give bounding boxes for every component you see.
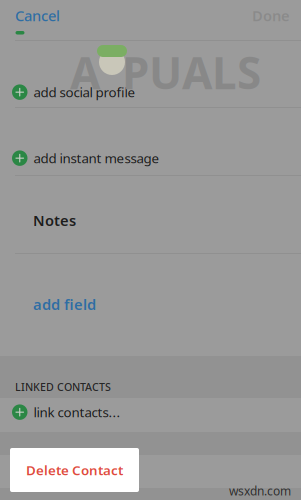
staticText: wsxdn.com	[229, 483, 291, 499]
staticText: add field	[33, 294, 96, 314]
button[interactable]: add field	[0, 254, 301, 356]
button[interactable]: Cancel	[13, 3, 62, 28]
button[interactable]: Done	[250, 3, 292, 28]
staticText: LINKED CONTACTS	[15, 380, 111, 394]
staticText: add social profile	[33, 83, 135, 101]
staticText: link contacts...	[33, 403, 120, 421]
button[interactable]: link contacts...	[0, 398, 301, 432]
staticText: Delete Contact	[26, 461, 123, 479]
staticText: Notes	[33, 210, 76, 230]
button[interactable]: Delete Contact	[10, 448, 139, 492]
button[interactable]: add social profile	[0, 41, 301, 107]
staticText: add instant message	[33, 149, 159, 167]
staticText: Done	[252, 6, 290, 25]
staticText: Cancel	[15, 6, 60, 25]
button[interactable]: Notes	[0, 176, 301, 253]
button[interactable]: add instant message	[0, 108, 301, 175]
staticText: A PUALS	[70, 43, 261, 101]
